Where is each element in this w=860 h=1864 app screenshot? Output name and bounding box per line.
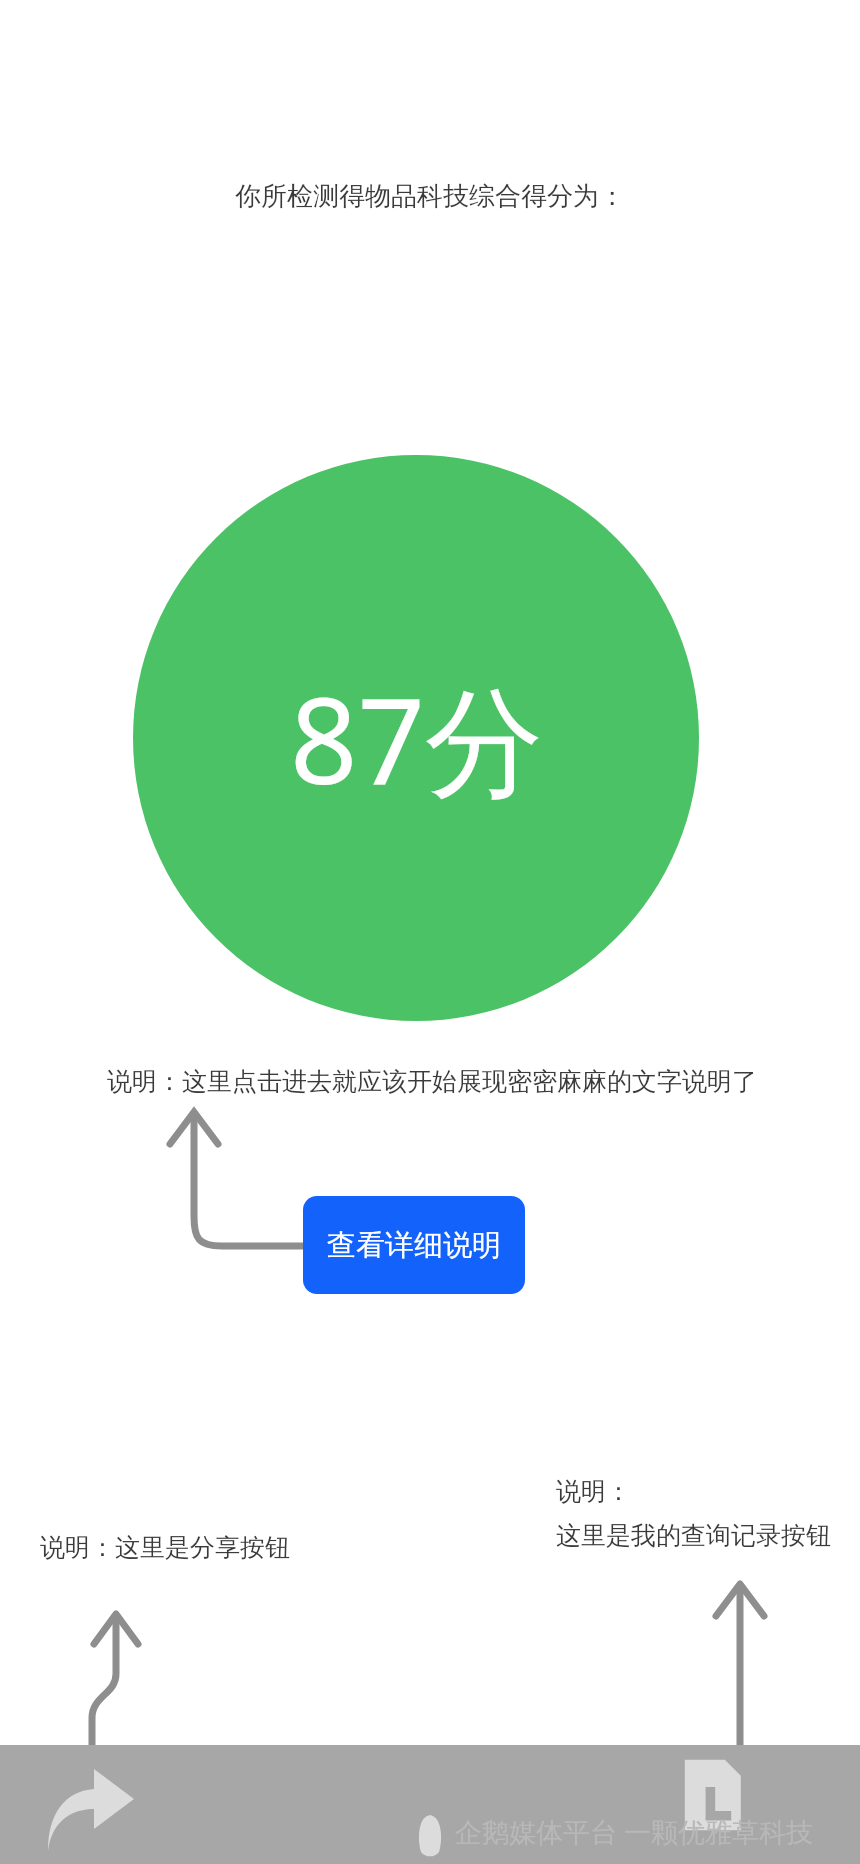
button[interactable]: 查看详细说明 bbox=[303, 1196, 525, 1294]
staticText: 87分 bbox=[290, 658, 543, 819]
staticText: 企鹅媒体平台 一颗优雅草科技 bbox=[455, 1813, 814, 1850]
button[interactable]: 分享 bbox=[38, 1759, 138, 1859]
staticText: 说明： bbox=[556, 1476, 631, 1507]
staticText: 你所检测得物品科技综合得分为： bbox=[235, 180, 625, 213]
staticText: 查看详细说明 bbox=[327, 1227, 501, 1264]
button[interactable]: 查询记录 bbox=[672, 1755, 752, 1835]
staticText: 说明：这里是分享按钮 bbox=[40, 1532, 290, 1563]
staticText: 说明：这里点击进去就应该开始展现密密麻麻的文字说明了 bbox=[107, 1066, 757, 1097]
button[interactable]: 87分 bbox=[133, 455, 699, 1021]
staticText: 这里是我的查询记录按钮 bbox=[556, 1520, 831, 1551]
